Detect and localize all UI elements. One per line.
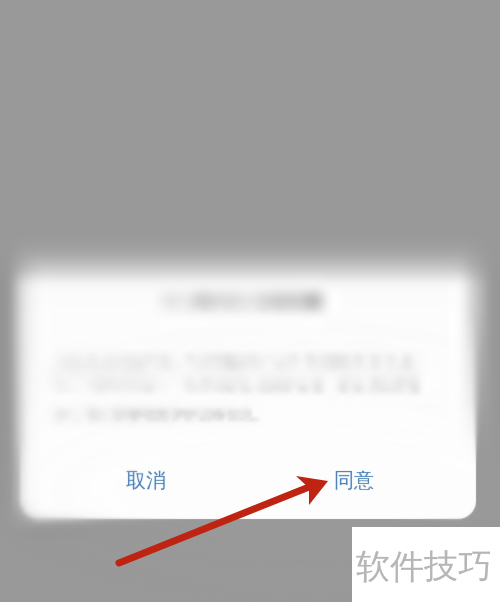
staticText: 软件技巧 [356, 545, 492, 588]
